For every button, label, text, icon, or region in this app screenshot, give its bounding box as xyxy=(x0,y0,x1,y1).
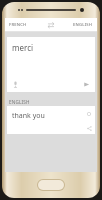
button[interactable]: Play translation xyxy=(82,80,91,89)
staticText: thank you xyxy=(12,111,45,121)
button[interactable]: Share xyxy=(86,125,92,131)
button[interactable]: ENGLISH xyxy=(60,18,97,32)
staticText: merci xyxy=(12,42,34,53)
button[interactable]: Swap languages xyxy=(42,18,60,32)
staticText: FRENCH xyxy=(9,22,27,28)
button[interactable]: Voice input xyxy=(11,80,20,89)
button[interactable]: merci xyxy=(7,37,95,92)
button[interactable]: FRENCH xyxy=(5,18,42,32)
button[interactable]: Save translation xyxy=(86,111,92,117)
staticText: ENGLISH xyxy=(73,22,93,28)
button[interactable]: Home xyxy=(37,179,65,191)
button[interactable]: thank you xyxy=(7,106,95,134)
staticText: ENGLISH xyxy=(9,99,30,105)
